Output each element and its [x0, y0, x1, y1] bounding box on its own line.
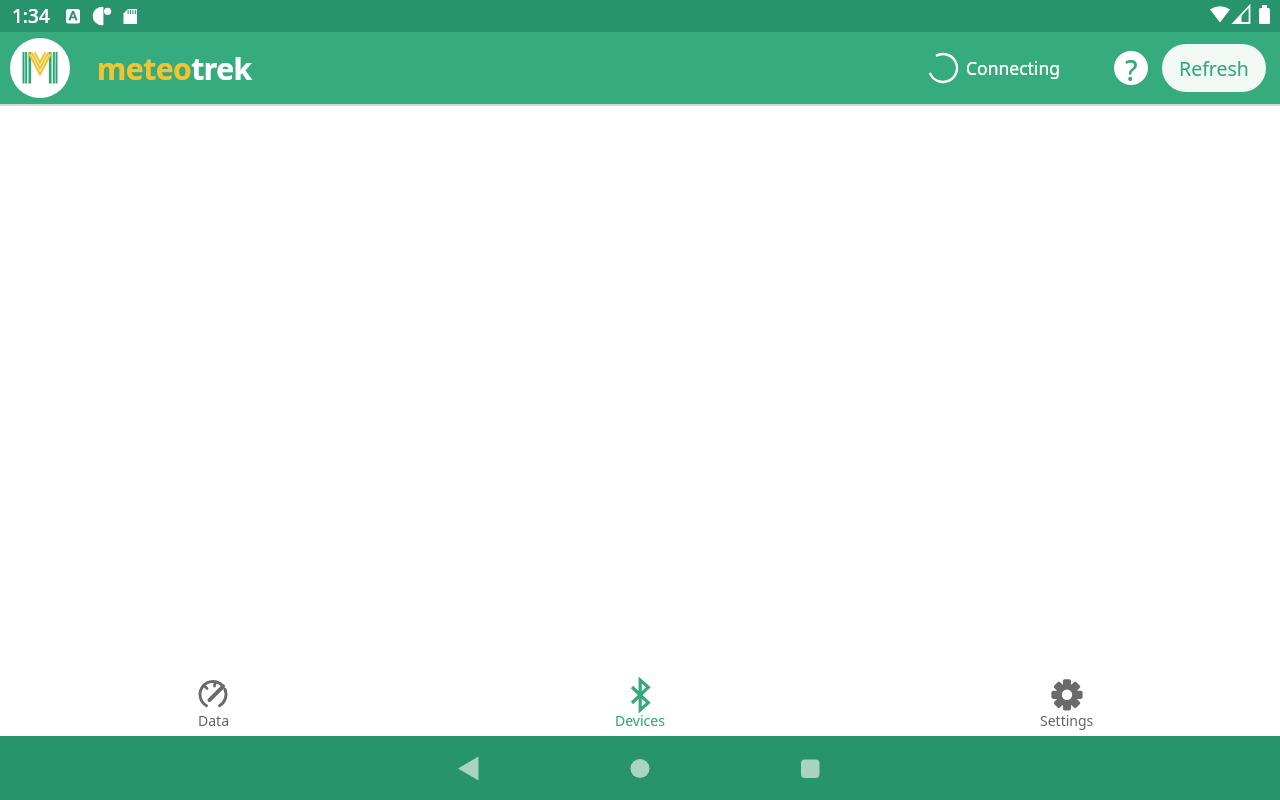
staticText: Devices — [615, 711, 665, 730]
button[interactable]: Devices — [426, 672, 853, 736]
staticText: ? — [1125, 51, 1138, 85]
staticText: meteotrek — [97, 48, 252, 89]
button[interactable]: Data — [0, 672, 426, 736]
button[interactable]: Refresh — [1162, 44, 1266, 92]
button[interactable]: ? — [1114, 51, 1148, 85]
staticText: Refresh — [1179, 55, 1249, 82]
staticText: Data — [198, 711, 229, 730]
button[interactable]: Settings — [853, 672, 1280, 736]
button[interactable] — [10, 38, 70, 98]
button[interactable] — [426, 736, 853, 800]
staticText: Connecting — [966, 56, 1060, 80]
staticText: Settings — [1040, 711, 1094, 730]
staticText: 1:34 — [12, 3, 50, 29]
